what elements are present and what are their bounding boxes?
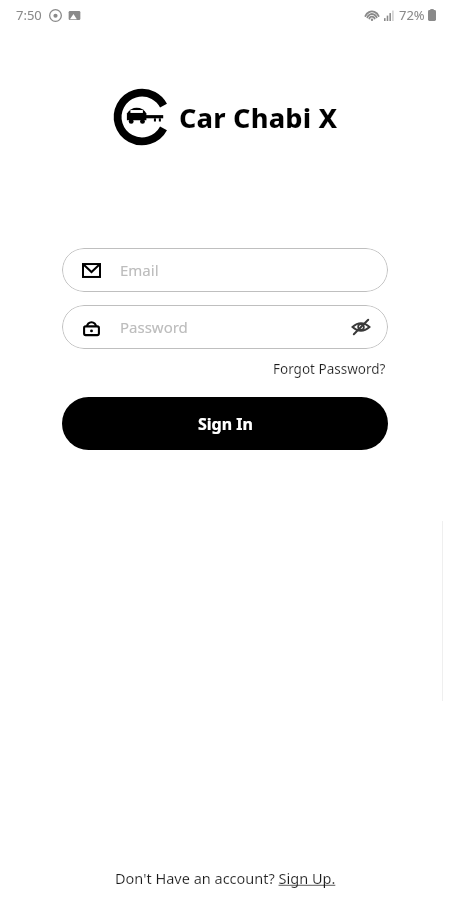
staticText: Don't Have an account? Sign Up. — [115, 868, 336, 888]
button[interactable]: Don't Have an account? Sign Up. — [109, 864, 342, 892]
button[interactable]: Sign In — [62, 397, 388, 450]
staticText: Car Chabi X — [179, 99, 338, 136]
staticText: Forgot Password? — [273, 360, 386, 378]
button[interactable]: Email — [62, 248, 388, 292]
button[interactable]: Show password — [348, 314, 374, 340]
button[interactable]: Forgot Password? — [271, 358, 388, 380]
staticText: 72% — [399, 6, 425, 24]
staticText: Email — [120, 260, 159, 280]
staticText: Sign In — [198, 413, 253, 435]
button[interactable]: Password — [62, 305, 388, 349]
staticText: 7:50 — [16, 6, 42, 24]
staticText: Password — [120, 317, 348, 337]
